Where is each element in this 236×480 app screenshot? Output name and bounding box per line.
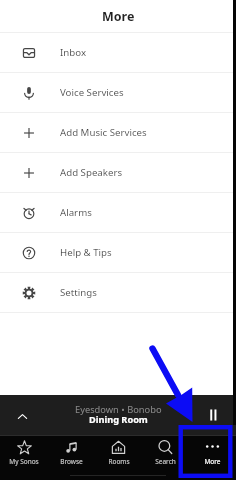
button[interactable]: Settings [0, 273, 236, 312]
staticText: Inbox [60, 46, 87, 59]
staticText: Rooms [108, 457, 130, 466]
button[interactable]: Alarms [0, 193, 236, 232]
button[interactable]: Rooms [95, 436, 142, 480]
staticText: More [204, 457, 221, 466]
button[interactable]: Browse [48, 436, 95, 480]
button[interactable]: Inbox [0, 33, 236, 72]
button[interactable]: Voice Services [0, 73, 236, 112]
button[interactable]: Add Speakers [0, 153, 236, 192]
staticText: Search [155, 457, 176, 466]
staticText: My Sonos [9, 457, 39, 466]
staticText: Dining Room [89, 413, 148, 426]
button[interactable]: Add Music Services [0, 113, 236, 152]
staticText: Eyesdown • Bonobo [75, 403, 162, 416]
button[interactable]: Help & Tips [0, 233, 236, 272]
staticText: Alarms [60, 206, 92, 219]
staticText: Voice Services [60, 86, 124, 99]
button[interactable]: Pause [202, 404, 224, 426]
staticText: Help & Tips [60, 246, 112, 259]
button[interactable]: More [189, 436, 236, 480]
staticText: Browse [60, 457, 83, 466]
button[interactable]: My Sonos [0, 436, 48, 480]
button[interactable]: Expand now playing [11, 405, 33, 427]
button[interactable]: Expand now playing [0, 395, 236, 435]
staticText: Add Speakers [60, 166, 123, 179]
button[interactable]: Search [142, 436, 189, 480]
staticText: Settings [60, 286, 97, 299]
staticText: More [102, 8, 135, 25]
staticText: Add Music Services [60, 126, 147, 139]
